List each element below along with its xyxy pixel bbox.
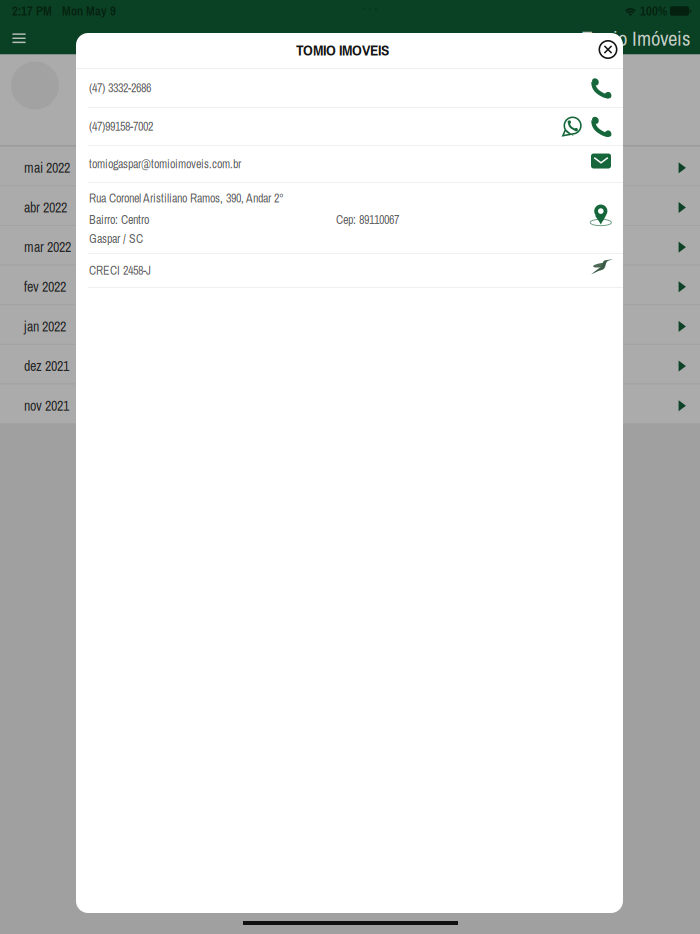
staticText: 100%: [640, 2, 667, 20]
staticText: mar 2022: [24, 238, 71, 256]
button[interactable]: WhatsApp: [562, 116, 582, 136]
button[interactable]: Call: [591, 116, 611, 136]
button[interactable]: mai 2022: [0, 147, 700, 185]
staticText: jan 2022: [24, 317, 66, 336]
button[interactable]: Menu: [0, 22, 38, 54]
staticText: CRECI 2458-J: [89, 262, 151, 279]
staticText: Mon May 9: [62, 2, 116, 20]
staticText: abr 2022: [24, 198, 67, 217]
staticText: Rua Coronel Aristiliano Ramos, 390, Anda…: [89, 190, 284, 206]
button[interactable]: abr 2022: [0, 186, 700, 225]
staticText: Cep: 89110067: [336, 211, 399, 228]
button[interactable]: nov 2021: [0, 384, 700, 423]
staticText: TOMIO IMOVEIS: [296, 40, 389, 60]
staticText: 2:17 PM: [12, 2, 52, 20]
button[interactable]: Rua Coronel Aristiliano Ramos, 390, Anda…: [76, 183, 623, 253]
staticText: (47)99158-7002: [89, 118, 153, 135]
staticText: nov 2021: [24, 396, 69, 415]
button[interactable]: Close: [591, 33, 625, 66]
staticText: Tomio Imóveis: [582, 24, 690, 52]
staticText: Bairro: Centro: [89, 211, 149, 228]
staticText: fev 2022: [24, 277, 66, 296]
staticText: (47) 3332-2686: [89, 80, 151, 96]
button[interactable]: dez 2021: [0, 345, 700, 383]
button[interactable]: tomiogaspar@tomioimoveis.com.br: [76, 146, 623, 182]
staticText: Gaspar / SC: [89, 230, 143, 247]
button[interactable]: fev 2022: [0, 266, 700, 304]
button[interactable]: jan 2022: [0, 305, 700, 344]
staticText: tomiogaspar@tomioimoveis.com.br: [89, 156, 241, 172]
staticText: dez 2021: [24, 356, 69, 375]
button[interactable]: (47) 3332-2686: [76, 69, 623, 107]
staticText: mai 2022: [24, 158, 70, 177]
button[interactable]: mar 2022: [0, 226, 700, 264]
